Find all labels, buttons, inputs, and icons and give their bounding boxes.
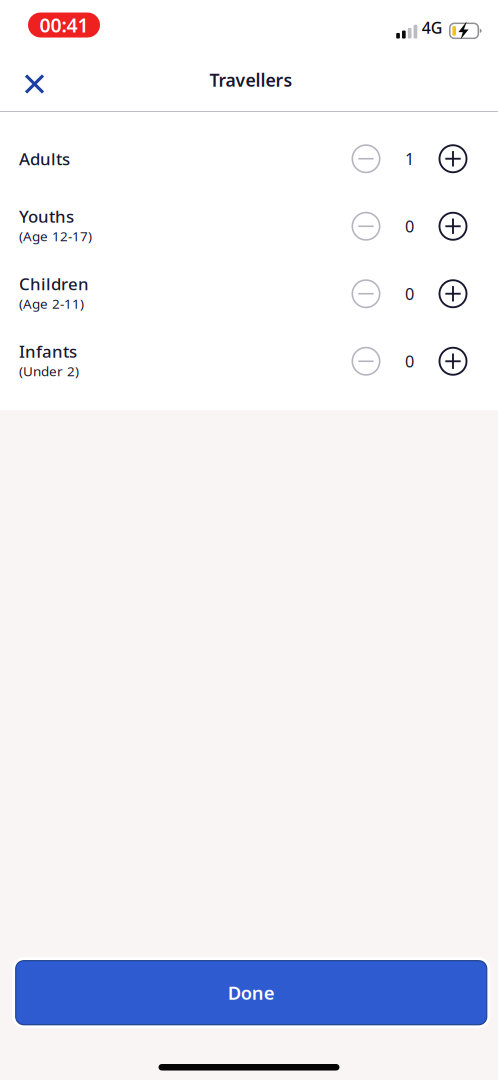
staticText: (Under 2)	[19, 362, 79, 380]
button[interactable]: Decrease Infants	[344, 335, 388, 387]
button[interactable]: Decrease Children	[344, 268, 388, 320]
button[interactable]: Decrease Youths	[344, 200, 388, 252]
button[interactable]: Decrease Adults	[344, 133, 388, 185]
staticText: 1	[405, 148, 414, 170]
button[interactable]: Increase Children	[431, 268, 475, 320]
staticText: 0	[405, 215, 414, 237]
staticText: (Age 2-11)	[19, 294, 84, 313]
button[interactable]: Increase Infants	[431, 335, 475, 387]
staticText: Adults	[19, 147, 70, 170]
staticText: Done	[228, 980, 275, 1005]
staticText: Infants	[19, 340, 77, 363]
staticText: 4G	[422, 17, 443, 39]
button[interactable]: Increase Youths	[431, 200, 475, 252]
button[interactable]: Increase Adults	[431, 133, 475, 185]
staticText: (Age 12-17)	[19, 227, 92, 245]
staticText: 0	[405, 350, 414, 372]
staticText: 00:41	[39, 12, 88, 38]
staticText: Youths	[19, 205, 74, 228]
staticText: Travellers	[209, 68, 292, 92]
staticText: Children	[19, 272, 89, 295]
staticText: 0	[405, 283, 414, 305]
button[interactable]: Done	[12, 957, 490, 1028]
button[interactable]: Close	[12, 59, 56, 102]
